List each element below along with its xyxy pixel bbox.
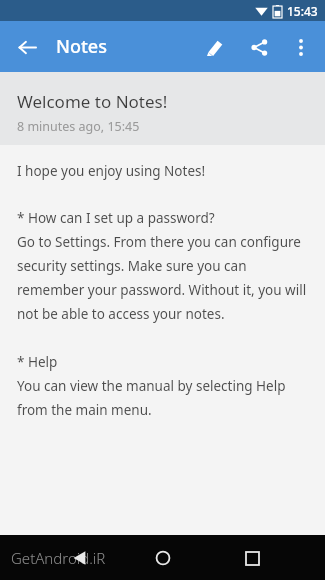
button[interactable]: Back xyxy=(6,26,48,68)
button[interactable]: Back xyxy=(62,541,96,575)
button[interactable]: Home xyxy=(144,539,182,577)
staticText: Notes xyxy=(56,34,107,59)
button[interactable]: Share xyxy=(237,25,281,69)
staticText: I hope you enjoy using Notes! * How can … xyxy=(17,162,311,419)
staticText: GetAndroid.iR xyxy=(11,548,106,568)
button[interactable]: Edit xyxy=(193,25,237,69)
button[interactable]: More options xyxy=(281,27,321,67)
staticText: Welcome to Notes! xyxy=(17,90,168,113)
button[interactable]: Recent apps xyxy=(234,540,270,576)
staticText: 8 minutes ago, 15:45 xyxy=(17,118,140,135)
button[interactable]: Welcome to Notes! xyxy=(0,72,325,145)
staticText: 15:43 xyxy=(287,3,318,19)
